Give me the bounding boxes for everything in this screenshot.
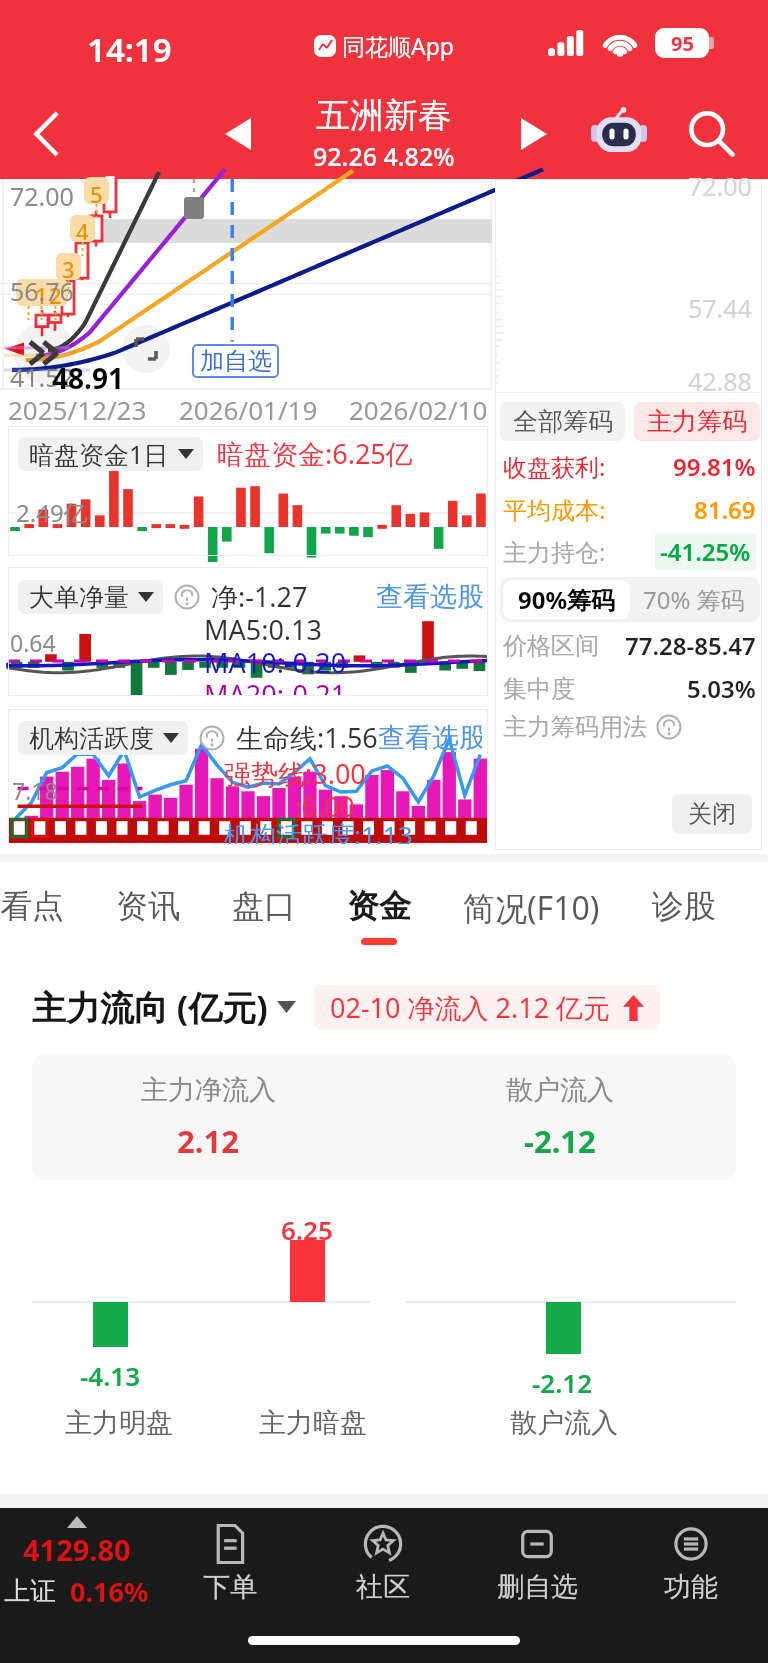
staticText: 2.49亿	[16, 496, 88, 529]
staticText: 大单净量	[29, 582, 129, 613]
staticText: 盘口	[232, 886, 296, 926]
button[interactable]: 暗盘资金1日	[18, 437, 203, 471]
staticText: 41.52	[10, 360, 74, 394]
staticText: 72.00	[10, 179, 74, 213]
staticText: 14:19	[87, 27, 172, 72]
staticText: MA20:-0.21	[204, 676, 347, 696]
staticText: 5.03%	[687, 672, 756, 705]
staticText: 机构活跃度	[29, 723, 154, 754]
button[interactable]: 简况(F10)	[461, 862, 602, 962]
staticText: MA5:0.13	[204, 611, 322, 648]
button[interactable]: 主力筹码	[634, 402, 760, 441]
staticText: 5	[90, 179, 103, 209]
staticText: MA10:-0.20	[204, 644, 347, 681]
staticText: 48.91	[52, 359, 124, 397]
staticText: 上证	[4, 1575, 56, 1608]
button[interactable]: Fullscreen	[122, 325, 170, 373]
staticText: 价格区间	[503, 631, 599, 661]
button[interactable]: AI assistant	[576, 88, 662, 179]
staticText: 暗盘资金:6.25亿	[217, 435, 413, 472]
staticText: 五洲新春	[316, 94, 452, 137]
staticText: 净:-1.27	[211, 578, 308, 615]
staticText: 95	[671, 30, 694, 57]
button[interactable]: 关闭	[672, 794, 752, 834]
staticText: 4129.80	[23, 1530, 131, 1569]
staticText: 77.28-85.47	[625, 629, 756, 662]
staticText: 强势线:3.00	[224, 755, 366, 792]
staticText: 功能	[664, 1570, 718, 1604]
staticText: 90%筹码	[518, 583, 616, 616]
button[interactable]: 社区	[306, 1508, 460, 1618]
staticText: 主力流向 (亿元)	[32, 984, 268, 1030]
staticText: 同花顺App	[342, 30, 454, 61]
button[interactable]: 删自选	[460, 1508, 614, 1618]
button[interactable]: 看点	[0, 862, 66, 962]
button[interactable]: 全部筹码	[500, 402, 625, 441]
button[interactable]: 机构活跃度	[18, 721, 188, 755]
staticText: 全部筹码	[513, 406, 613, 437]
button[interactable]: Expand chart	[14, 322, 76, 384]
button[interactable]: 诊股	[650, 862, 718, 962]
button[interactable]: 大单净量	[18, 580, 163, 614]
staticText: 暗盘资金1日	[29, 437, 169, 471]
staticText: 生命线:1.56	[236, 719, 378, 756]
button[interactable]: Search	[668, 88, 754, 179]
staticText: 主力筹码	[647, 406, 747, 437]
staticText: 社区	[356, 1570, 410, 1604]
staticText: 资金	[347, 886, 411, 926]
staticText: 主力筹码用法	[503, 712, 647, 742]
staticText: 平均成本:	[503, 493, 606, 526]
staticText: 2.12	[177, 1120, 239, 1162]
staticText: 主力持仓:	[503, 535, 606, 568]
staticText: 下单	[203, 1570, 257, 1604]
button[interactable]: 资金	[345, 862, 413, 962]
staticText: 4	[76, 216, 89, 246]
staticText: 99.81%	[673, 450, 756, 483]
button[interactable]: 4129.80	[0, 1508, 153, 1618]
staticText: 主力暗盘	[259, 1406, 367, 1440]
staticText: 6.25	[281, 1212, 333, 1247]
staticText: 诊股	[652, 886, 716, 926]
button[interactable]: Back	[8, 88, 86, 179]
staticText: 2	[49, 280, 62, 310]
staticText: 3	[62, 254, 75, 284]
button[interactable]: 功能	[614, 1508, 768, 1618]
staticText: 集中度	[503, 674, 575, 704]
button[interactable]: 70% 筹码	[630, 580, 757, 619]
button[interactable]: 五洲新春	[289, 88, 479, 179]
staticText: 散户流入	[506, 1073, 614, 1107]
staticText: 1	[35, 280, 48, 310]
staticText: 70% 筹码	[643, 583, 745, 616]
staticText: -4.13	[80, 1358, 141, 1393]
staticText: -2.12	[524, 1120, 596, 1162]
staticText: 2025/12/23	[8, 392, 147, 420]
button[interactable]: 资讯	[114, 862, 182, 962]
staticText: 2026/02/10	[349, 392, 488, 420]
staticText: 看点	[0, 886, 64, 926]
button[interactable]: Previous stock	[196, 88, 280, 179]
staticText: 加自选	[200, 346, 272, 376]
staticText: 81.69	[694, 493, 756, 526]
staticText: -2.12	[532, 1365, 593, 1400]
button[interactable]: 盘口	[230, 862, 298, 962]
staticText: 主力净流入	[141, 1073, 276, 1107]
staticText: 57.44	[688, 291, 752, 325]
button[interactable]: 90%筹码	[503, 580, 630, 619]
staticText: 02-10 净流入 2.12 亿元	[330, 989, 611, 1026]
staticText: 7.18	[12, 775, 58, 806]
staticText: 查看选股	[378, 721, 482, 755]
staticText: 收盘获利:	[503, 450, 606, 483]
staticText: 56.76	[10, 274, 74, 308]
button[interactable]: 下单	[153, 1508, 306, 1618]
staticText: -41.25%	[660, 535, 751, 568]
staticText: 删自选	[497, 1570, 578, 1604]
button[interactable]: 02-10 净流入 2.12 亿元	[314, 985, 660, 1030]
staticText: 散户流入	[510, 1406, 618, 1440]
staticText: 0.64	[10, 627, 56, 658]
button[interactable]: Next stock	[492, 88, 576, 179]
button[interactable]: 加自选	[192, 344, 279, 378]
staticText: 72.00	[688, 169, 752, 203]
staticText: 资讯	[116, 886, 180, 926]
staticText: 主力明盘	[65, 1406, 173, 1440]
staticText: 2026/01/19	[179, 392, 318, 420]
